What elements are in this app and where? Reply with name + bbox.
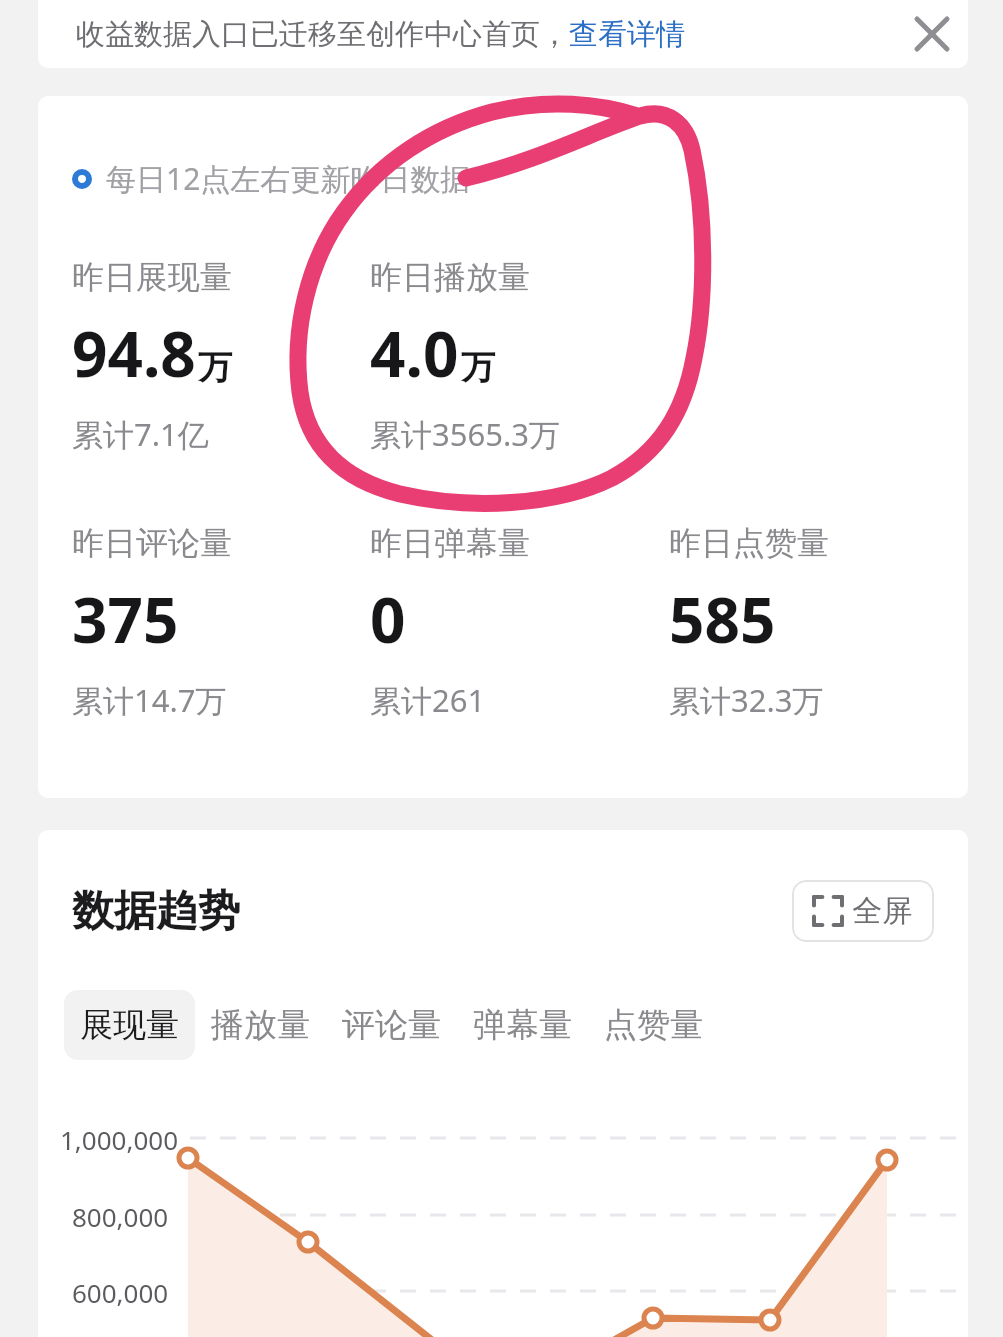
staticText: 点赞量 [604, 1004, 703, 1046]
staticText: 昨日展现量 [72, 257, 232, 297]
staticText: 0 [370, 577, 406, 661]
staticText: 展现量 [80, 1004, 179, 1046]
button[interactable]: 评论量 [326, 990, 457, 1060]
button[interactable]: 昨日弹幕量 [370, 523, 669, 721]
button[interactable]: 展现量 [64, 990, 195, 1060]
staticText: 万 [198, 346, 232, 389]
staticText: 收益数据入口已迁移至创作中心首页， [76, 16, 569, 53]
button[interactable]: 弹幕量 [457, 990, 588, 1060]
button[interactable]: 收益数据入口已迁移至创作中心首页， [76, 16, 896, 53]
staticText: 每日12点左右更新昨日数据 [106, 158, 471, 199]
staticText: 600,000 [72, 1275, 169, 1310]
staticText: 800,000 [72, 1199, 169, 1234]
button[interactable]: 昨日评论量 [72, 523, 370, 721]
staticText: 1,000,000 [60, 1122, 179, 1157]
button[interactable]: 每日12点左右更新昨日数据 [72, 158, 471, 199]
button[interactable]: 点赞量 [588, 990, 719, 1060]
button[interactable]: 播放量 [195, 990, 326, 1060]
staticText: 昨日弹幕量 [370, 523, 530, 563]
staticText: 4.0 [370, 311, 459, 395]
staticText: 累计3565.3万 [370, 413, 560, 455]
button[interactable]: 关闭 [896, 0, 968, 68]
staticText: 昨日播放量 [370, 257, 530, 297]
staticText: 585 [669, 577, 776, 661]
staticText: 查看详情 [569, 16, 685, 53]
staticText: 昨日点赞量 [669, 523, 829, 563]
staticText: 播放量 [211, 1004, 310, 1046]
staticText: 数据趋势 [72, 885, 240, 938]
staticText: 累计32.3万 [669, 679, 824, 721]
staticText: 昨日评论量 [72, 523, 232, 563]
staticText: 94.8 [72, 311, 196, 395]
staticText: 万 [461, 346, 495, 389]
staticText: 评论量 [342, 1004, 441, 1046]
staticText: 累计7.1亿 [72, 413, 209, 455]
button[interactable]: 昨日展现量 [72, 257, 370, 455]
button[interactable]: 全屏 [792, 880, 934, 942]
button[interactable]: 昨日点赞量 [669, 523, 968, 721]
staticText: 累计261 [370, 679, 486, 721]
staticText: 累计14.7万 [72, 679, 227, 721]
staticText: 全屏 [852, 892, 912, 930]
staticText: 弹幕量 [473, 1004, 572, 1046]
button[interactable]: 昨日播放量 [370, 257, 669, 455]
staticText: 375 [72, 577, 179, 661]
